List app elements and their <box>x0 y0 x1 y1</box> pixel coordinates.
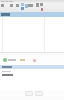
button[interactable]: Cancel <box>35 91 43 96</box>
button[interactable]: Status ok <box>3 58 7 62</box>
button[interactable]: OK <box>25 91 33 96</box>
button[interactable] <box>0 65 64 69</box>
